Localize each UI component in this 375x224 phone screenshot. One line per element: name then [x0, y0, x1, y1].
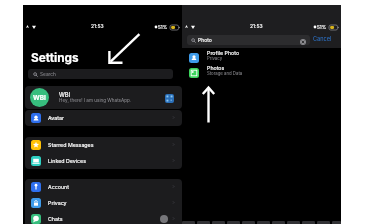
staticText: Privacy: [48, 200, 67, 206]
staticText: Search: [40, 71, 56, 77]
staticText: Chats: [48, 216, 63, 222]
staticText: Linked Devices: [48, 158, 86, 164]
button[interactable]: QR code: [165, 94, 174, 103]
button[interactable]: Photo: [187, 35, 310, 45]
button[interactable]: Search: [28, 69, 173, 79]
staticText: 51%: [158, 25, 168, 31]
button[interactable]: Avatar: [25, 110, 182, 126]
staticText: 21:53: [91, 23, 104, 29]
button[interactable]: Account: [25, 179, 182, 195]
staticText: Starred Messages: [48, 142, 94, 148]
button[interactable]: Linked Devices: [25, 153, 182, 169]
button[interactable]: Clear text: [300, 39, 306, 45]
button[interactable]: Chats: [25, 211, 182, 224]
staticText: 51%: [317, 25, 327, 31]
staticText: Storage and Data: [207, 71, 243, 76]
button[interactable]: Cancel: [313, 36, 332, 43]
staticText: Account: [48, 184, 69, 190]
button[interactable]: WBI: [25, 86, 182, 109]
staticText: Settings: [31, 51, 79, 65]
staticText: WBI: [59, 91, 71, 98]
staticText: WBI: [33, 94, 46, 102]
staticText: Profile Photo: [207, 50, 240, 56]
staticText: Photos: [207, 65, 225, 71]
button[interactable]: Photos: [189, 65, 334, 80]
staticText: Privacy: [207, 56, 223, 61]
button[interactable]: Privacy: [25, 195, 182, 211]
staticText: 21:53: [250, 23, 263, 29]
button[interactable]: Starred Messages: [25, 137, 182, 153]
staticText: Hey, there! I am using WhatsApp.: [59, 98, 132, 104]
staticText: Cancel: [313, 36, 332, 43]
staticText: Photo: [198, 37, 212, 43]
button[interactable]: Profile Photo: [189, 50, 334, 65]
staticText: Avatar: [48, 115, 64, 121]
